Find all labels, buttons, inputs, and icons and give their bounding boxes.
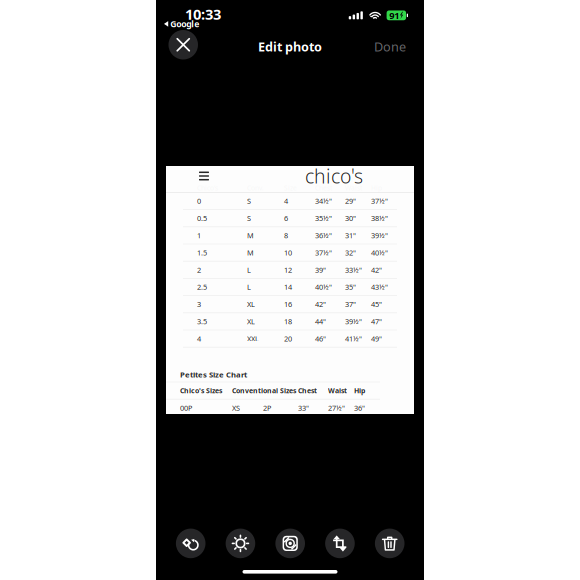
staticText: S	[247, 196, 251, 206]
button[interactable]: Delete	[375, 529, 404, 558]
staticText: 33"	[298, 403, 309, 413]
button[interactable]: Done	[368, 30, 412, 63]
button[interactable]: Close	[168, 30, 198, 59]
staticText: 41½"	[345, 334, 362, 344]
staticText: Hip	[371, 183, 382, 193]
staticText: 30"	[345, 213, 356, 223]
button[interactable]: Retouch	[176, 529, 205, 558]
staticText: Conventional Sizes	[232, 386, 296, 395]
staticText: 2.5	[197, 282, 207, 292]
staticText: 36½"	[315, 230, 332, 240]
button[interactable]: Crop	[325, 529, 355, 558]
staticText: Edit photo	[258, 38, 322, 55]
staticText: 6	[284, 213, 288, 223]
staticText: 3	[197, 299, 201, 309]
staticText: 16	[284, 299, 292, 309]
staticText: 40½"	[315, 282, 332, 292]
staticText: 42"	[315, 299, 326, 309]
staticText: 40½"	[371, 248, 388, 258]
staticText: 20	[284, 334, 292, 344]
staticText: 43½"	[371, 282, 388, 292]
staticText: 00P	[180, 403, 192, 413]
button[interactable]: Adjust	[226, 529, 255, 558]
staticText: 29"	[345, 196, 356, 206]
staticText: 32"	[345, 248, 356, 258]
staticText: 18	[284, 316, 292, 326]
staticText: 44"	[315, 316, 326, 326]
staticText: Chest	[315, 183, 332, 193]
staticText: Chico's Sizes	[180, 386, 222, 395]
staticText: 47"	[371, 316, 382, 326]
staticText: 37"	[345, 299, 356, 309]
staticText: 49"	[371, 334, 382, 344]
staticText: Conv.	[247, 183, 264, 193]
staticText: 10:33	[185, 4, 221, 24]
staticText: 39½"	[345, 316, 362, 326]
staticText: 10	[284, 248, 292, 258]
staticText: Google	[170, 18, 199, 30]
staticText: Chest	[298, 386, 317, 395]
button[interactable]: Filters	[275, 529, 305, 558]
staticText: 37½"	[315, 248, 332, 258]
staticText: 1.5	[197, 248, 207, 258]
staticText: 31"	[345, 230, 356, 240]
staticText: 35½"	[315, 213, 332, 223]
staticText: 14	[284, 282, 292, 292]
staticText: Hip	[354, 386, 365, 395]
staticText: XXL	[247, 334, 259, 344]
staticText: Petites Size Chart	[180, 369, 247, 380]
staticText: 35"	[345, 282, 356, 292]
staticText: 27½"	[328, 403, 345, 413]
staticText: 38½"	[371, 213, 388, 223]
staticText: 34½"	[315, 196, 332, 206]
staticText: 39½"	[371, 230, 388, 240]
staticText: chico's	[305, 163, 363, 189]
staticText: 45"	[371, 299, 382, 309]
staticText: 2P	[263, 403, 271, 413]
staticText: Chico's	[197, 183, 218, 193]
staticText: Waist	[345, 183, 362, 193]
staticText: Size	[284, 183, 297, 193]
staticText: 33½"	[345, 265, 362, 275]
staticText: L	[247, 265, 251, 275]
staticText: 4	[197, 334, 201, 344]
staticText: 37½"	[371, 196, 388, 206]
staticText: S	[247, 213, 251, 223]
staticText: L	[247, 282, 251, 292]
staticText: 91	[389, 9, 399, 22]
staticText: XS	[232, 403, 240, 413]
staticText: 2	[197, 265, 201, 275]
staticText: 39"	[315, 265, 326, 275]
staticText: M	[247, 230, 254, 240]
staticText: M	[247, 248, 254, 258]
staticText: 0.5	[197, 213, 207, 223]
staticText: 3.5	[197, 316, 207, 326]
staticText: 36"	[354, 403, 365, 413]
staticText: 8	[284, 230, 288, 240]
staticText: 12	[284, 265, 292, 275]
staticText: Waist	[328, 386, 347, 395]
staticText: Done	[374, 38, 406, 55]
staticText: 46"	[315, 334, 326, 344]
staticText: 1	[197, 230, 201, 240]
staticText: 42"	[371, 265, 382, 275]
staticText: 0	[197, 196, 201, 206]
staticText: XL	[247, 299, 255, 309]
staticText: 4	[284, 196, 288, 206]
staticText: XL	[247, 316, 255, 326]
